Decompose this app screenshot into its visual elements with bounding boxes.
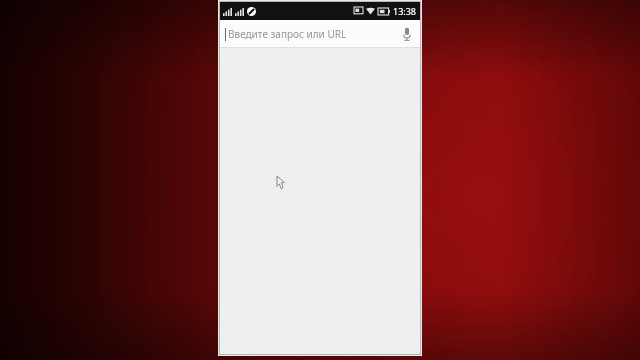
staticText: 13:38	[393, 5, 417, 17]
staticText: Введите запрос или URL	[228, 27, 347, 41]
button[interactable]: Голосовой поиск	[394, 20, 420, 48]
button[interactable]: Введите запрос или URL	[220, 20, 394, 48]
